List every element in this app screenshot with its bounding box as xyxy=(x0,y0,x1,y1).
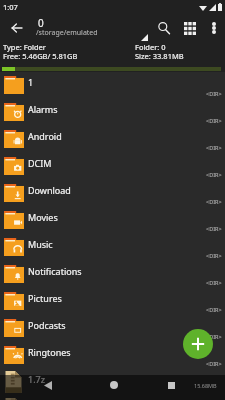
staticText: <DIR> xyxy=(206,306,222,313)
staticText: Ringtones xyxy=(28,346,193,358)
button[interactable]: Alarms xyxy=(0,99,225,126)
button[interactable]: Download xyxy=(0,180,225,207)
button[interactable]: More options xyxy=(202,16,225,40)
staticText: <DIR> xyxy=(206,171,222,178)
button[interactable]: Movies xyxy=(0,207,225,234)
staticText: 15.68MB xyxy=(194,382,217,389)
staticText: Music xyxy=(28,238,193,250)
staticText: <DIR> xyxy=(206,225,222,232)
staticText: Type: Folder xyxy=(3,42,46,52)
staticText: Download xyxy=(28,184,193,196)
staticText: Movies xyxy=(28,211,193,223)
button[interactable]: Search xyxy=(149,14,175,42)
staticText: Folder: 0 xyxy=(135,42,166,52)
button[interactable]: Back xyxy=(0,14,30,42)
button[interactable]: Home xyxy=(101,375,127,395)
staticText: <DIR> xyxy=(206,333,222,340)
staticText: Notifications xyxy=(28,265,193,277)
button[interactable]: 1 xyxy=(0,72,225,99)
button[interactable]: Notifications xyxy=(0,261,225,288)
staticText: 0 xyxy=(38,16,44,30)
staticText: <DIR> xyxy=(206,360,222,367)
button[interactable]: Music xyxy=(0,234,225,261)
staticText: Free: 5.46GB/ 5.81GB xyxy=(3,51,78,61)
staticText: Pictures xyxy=(28,292,193,304)
button[interactable]: Ringtones xyxy=(0,342,225,369)
staticText: <DIR> xyxy=(206,279,222,286)
staticText: 1 xyxy=(28,76,193,88)
staticText: <DIR> xyxy=(206,117,222,124)
button[interactable]: Grid view xyxy=(175,14,202,42)
staticText: /storage/emulated xyxy=(36,28,98,38)
button[interactable]: 2.7z xyxy=(0,396,225,400)
button[interactable]: Recents xyxy=(158,375,184,395)
staticText: <DIR> xyxy=(206,198,222,205)
staticText: <DIR> xyxy=(206,144,222,151)
button[interactable]: Add xyxy=(183,329,213,359)
staticText: Android xyxy=(28,130,193,142)
staticText: DCIM xyxy=(28,157,193,169)
staticText: Podcasts xyxy=(28,319,193,331)
button[interactable]: Pictures xyxy=(0,288,225,315)
button[interactable]: Android xyxy=(0,126,225,153)
button[interactable]: 1.7z xyxy=(0,369,225,396)
staticText: 1:07 xyxy=(3,2,18,12)
button[interactable]: DCIM xyxy=(0,153,225,180)
button[interactable]: Podcasts xyxy=(0,315,225,342)
staticText: <DIR> xyxy=(206,90,222,97)
button[interactable]: Back xyxy=(35,375,61,395)
staticText: <DIR> xyxy=(206,252,222,259)
staticText: Size: 33.81MB xyxy=(135,51,184,61)
staticText: Alarms xyxy=(28,103,193,115)
staticText: 1.7z xyxy=(28,373,193,385)
